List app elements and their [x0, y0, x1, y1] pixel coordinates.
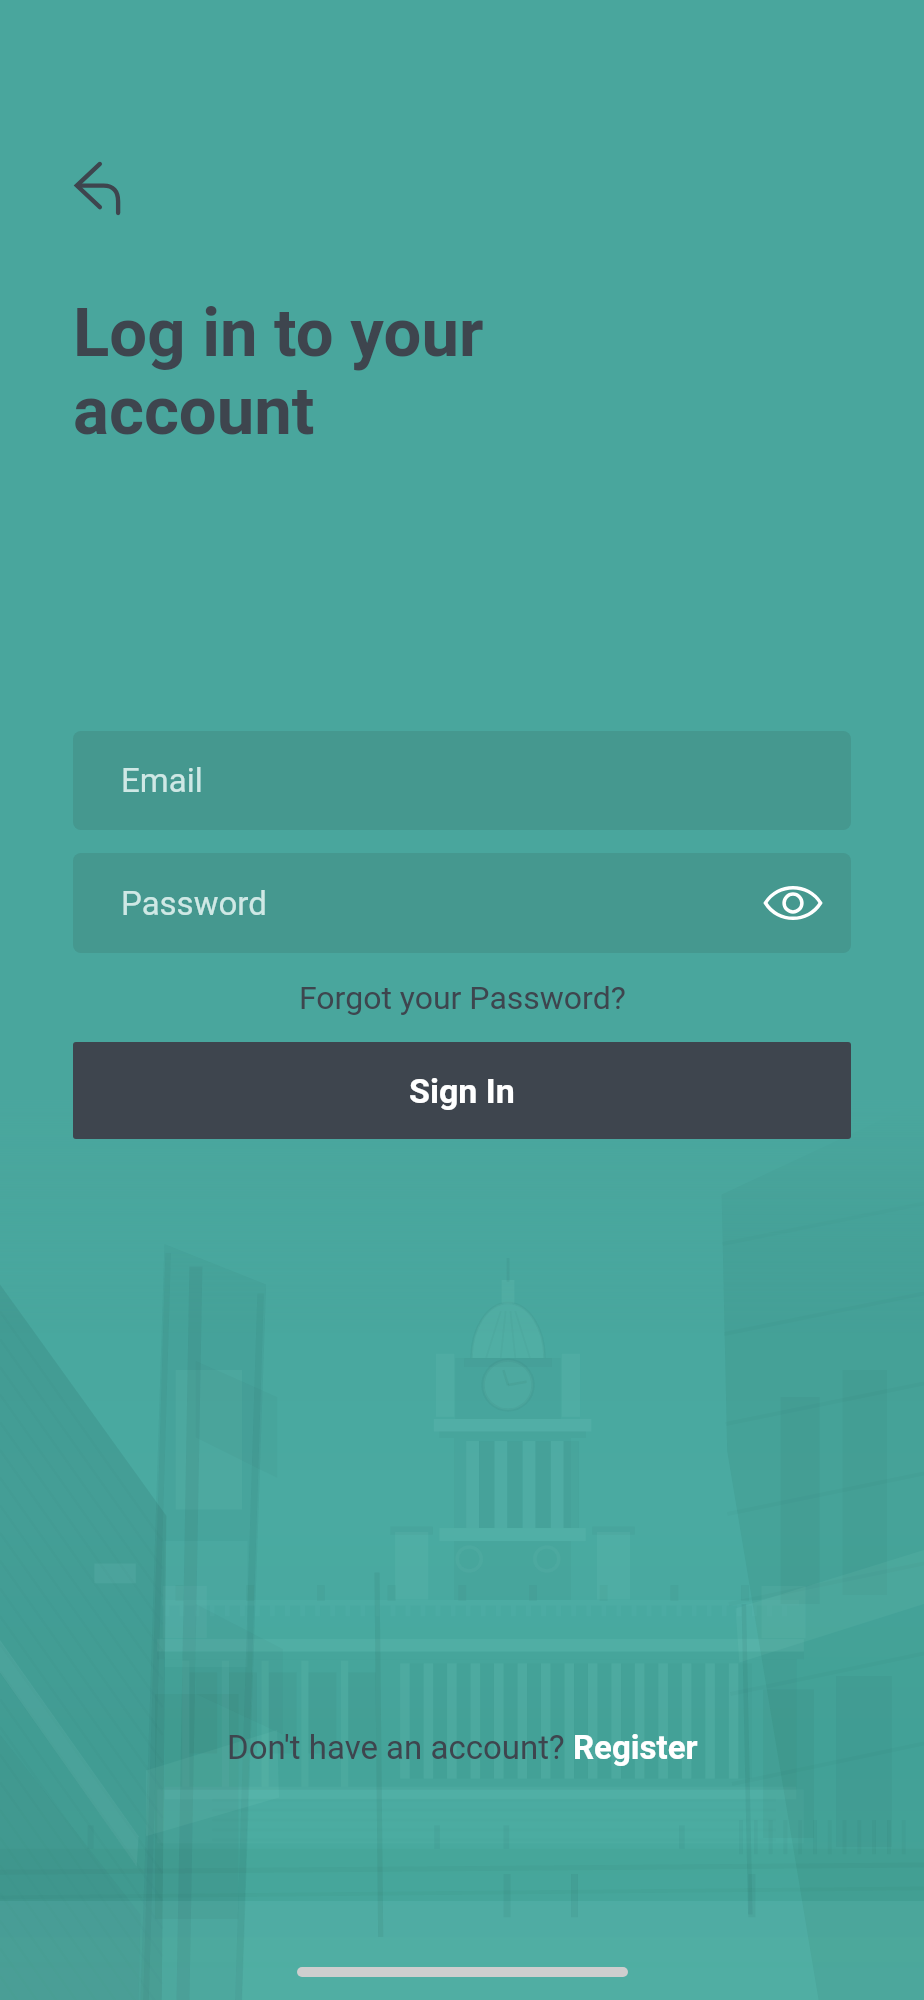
staticText: Sign In — [409, 1071, 515, 1111]
staticText: Forgot your Password? — [299, 979, 626, 1017]
button[interactable]: Show password — [755, 865, 831, 941]
button[interactable]: Register — [573, 1728, 698, 1767]
button[interactable]: Password — [73, 853, 851, 953]
button[interactable]: Sign In — [73, 1042, 851, 1139]
button[interactable]: Forgot your Password? — [285, 975, 640, 1021]
button[interactable]: Back — [49, 140, 145, 236]
staticText: Don't have an account? — [227, 1728, 573, 1767]
staticText: Email — [121, 761, 203, 800]
staticText: Register — [573, 1728, 698, 1767]
staticText: Log in to your account — [73, 294, 484, 450]
button[interactable]: Email — [73, 731, 851, 830]
staticText: Password — [121, 884, 267, 923]
